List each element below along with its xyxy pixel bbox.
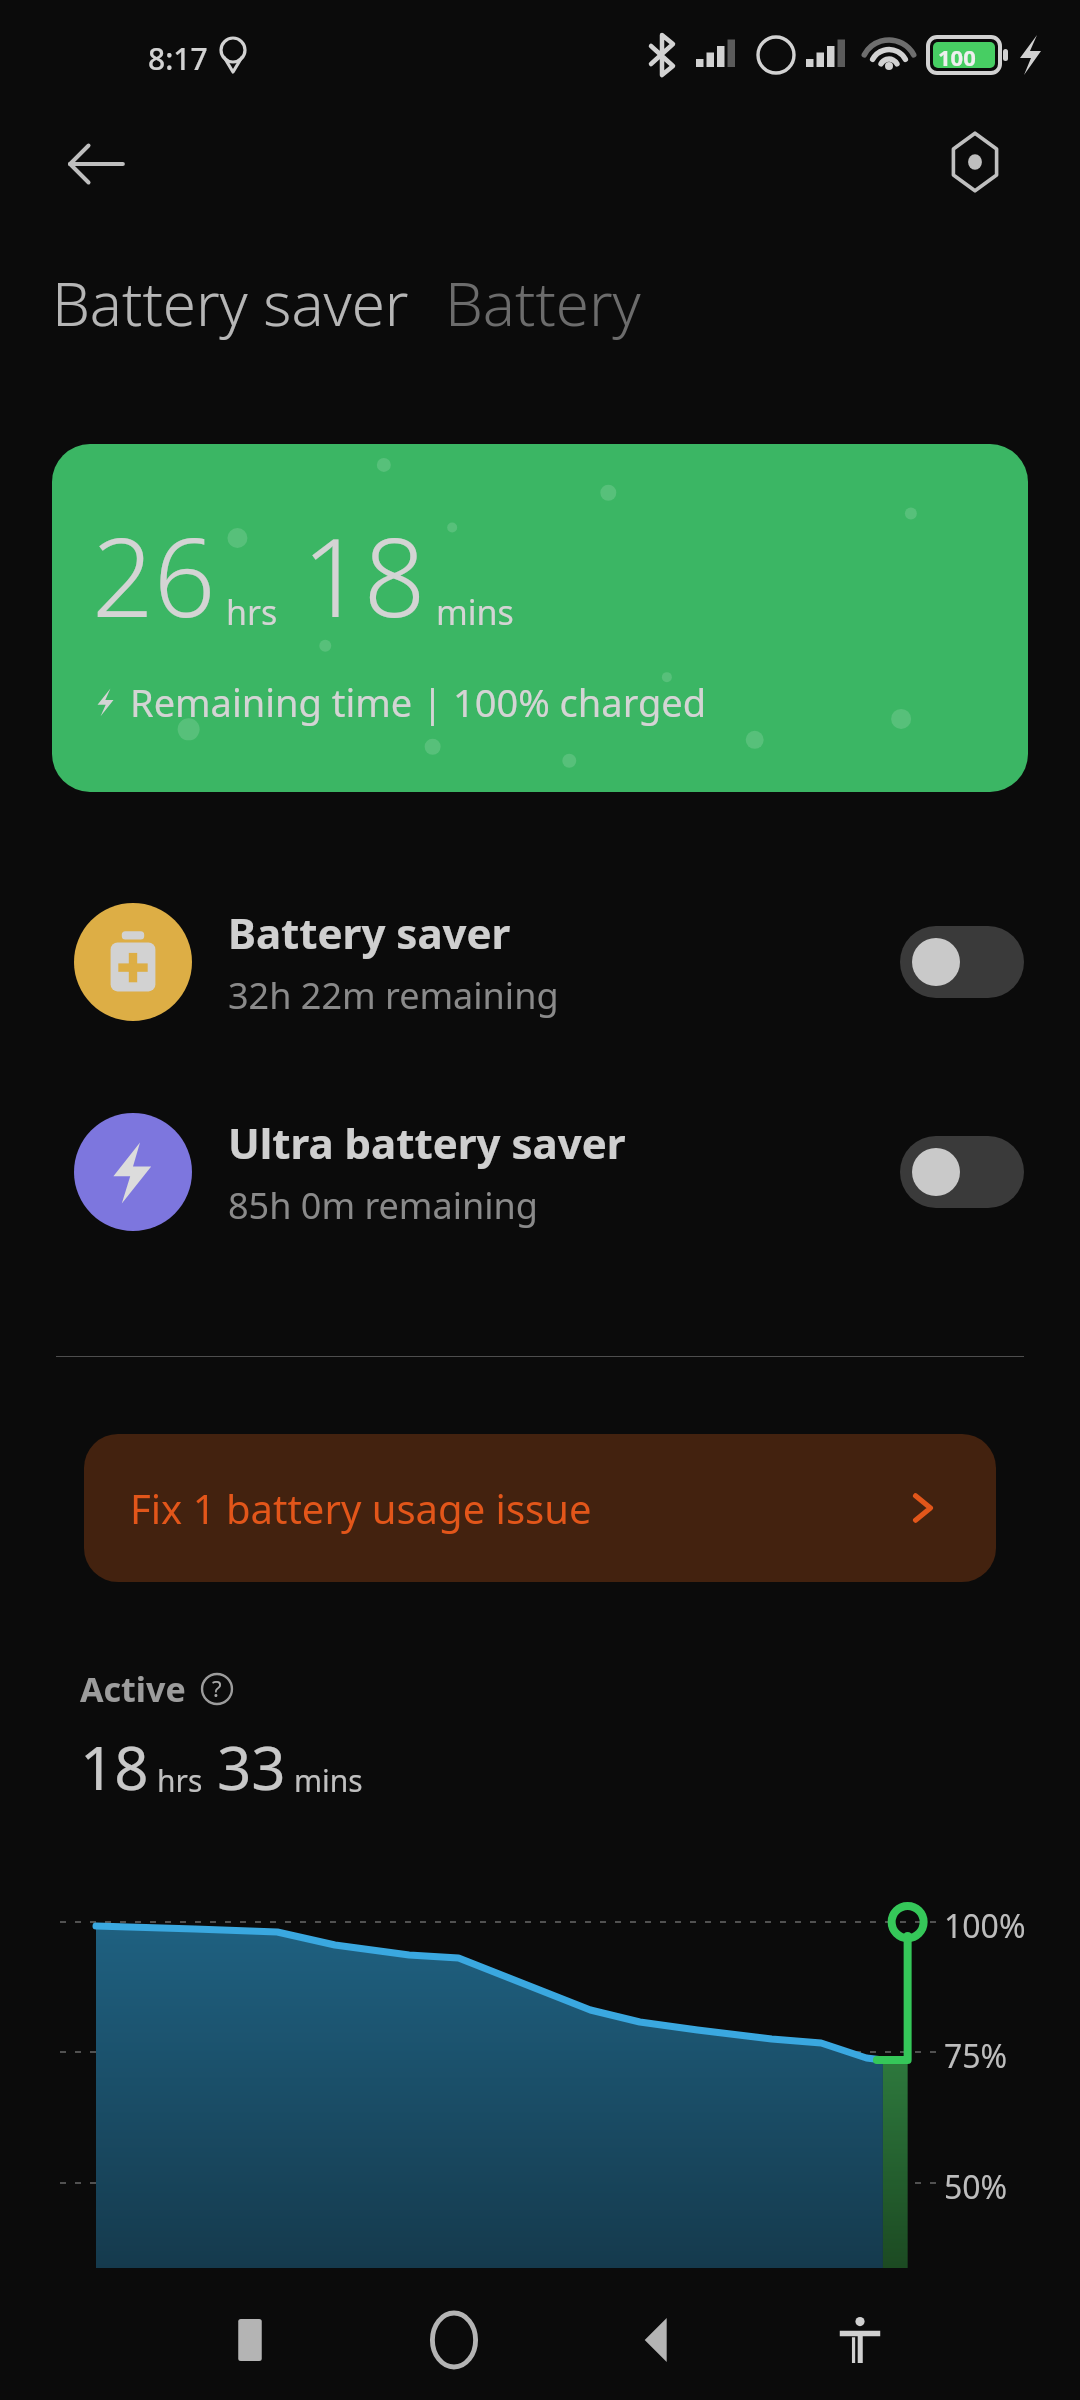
button[interactable]: Fix 1 battery usage issue	[84, 1434, 996, 1582]
button[interactable]: Battery	[445, 262, 641, 344]
staticText: 33	[217, 1726, 286, 1808]
button[interactable]: Help	[200, 1672, 234, 1706]
button[interactable]: Ultra battery saver toggle	[900, 1136, 1024, 1208]
staticText: Fix 1 battery usage issue	[130, 1481, 592, 1535]
button[interactable]: Battery saver toggle	[900, 926, 1024, 998]
staticText: 26	[92, 502, 216, 649]
staticText: Battery saver	[52, 262, 409, 344]
staticText: Remaining time | 100% charged	[130, 676, 707, 728]
staticText: 100	[938, 42, 976, 72]
button[interactable]: Settings	[935, 122, 1015, 202]
staticText: hrs	[157, 1760, 203, 1801]
staticText: 85h 0m remaining	[228, 1181, 538, 1230]
staticText: 8:17	[148, 38, 208, 79]
staticText: Active	[80, 1666, 186, 1712]
staticText: Battery saver	[228, 904, 511, 961]
staticText: Ultra battery saver	[228, 1114, 626, 1171]
staticText: hrs	[226, 589, 278, 635]
staticText: 50%	[944, 2165, 1008, 2209]
button[interactable]: Ultra battery saver	[0, 1082, 1080, 1262]
staticText: mins	[294, 1760, 363, 1801]
staticText: 100%	[944, 1904, 1026, 1948]
button[interactable]: 26	[52, 444, 1028, 792]
button[interactable]: Back	[56, 120, 144, 208]
staticText: 32h 22m remaining	[228, 971, 559, 1020]
button[interactable]: Home	[404, 2290, 504, 2390]
staticText: 18	[302, 502, 426, 649]
staticText: Battery	[445, 262, 641, 344]
button[interactable]: Back	[607, 2290, 707, 2390]
staticText: mins	[436, 589, 514, 635]
staticText: 75%	[944, 2034, 1008, 2078]
button[interactable]: Battery saver	[52, 262, 409, 344]
button[interactable]: Battery saver	[0, 872, 1080, 1052]
staticText: ?	[212, 1673, 222, 1703]
button[interactable]: Recents	[200, 2290, 300, 2390]
staticText: 18	[80, 1726, 149, 1808]
button[interactable]: Accessibility	[810, 2290, 910, 2390]
